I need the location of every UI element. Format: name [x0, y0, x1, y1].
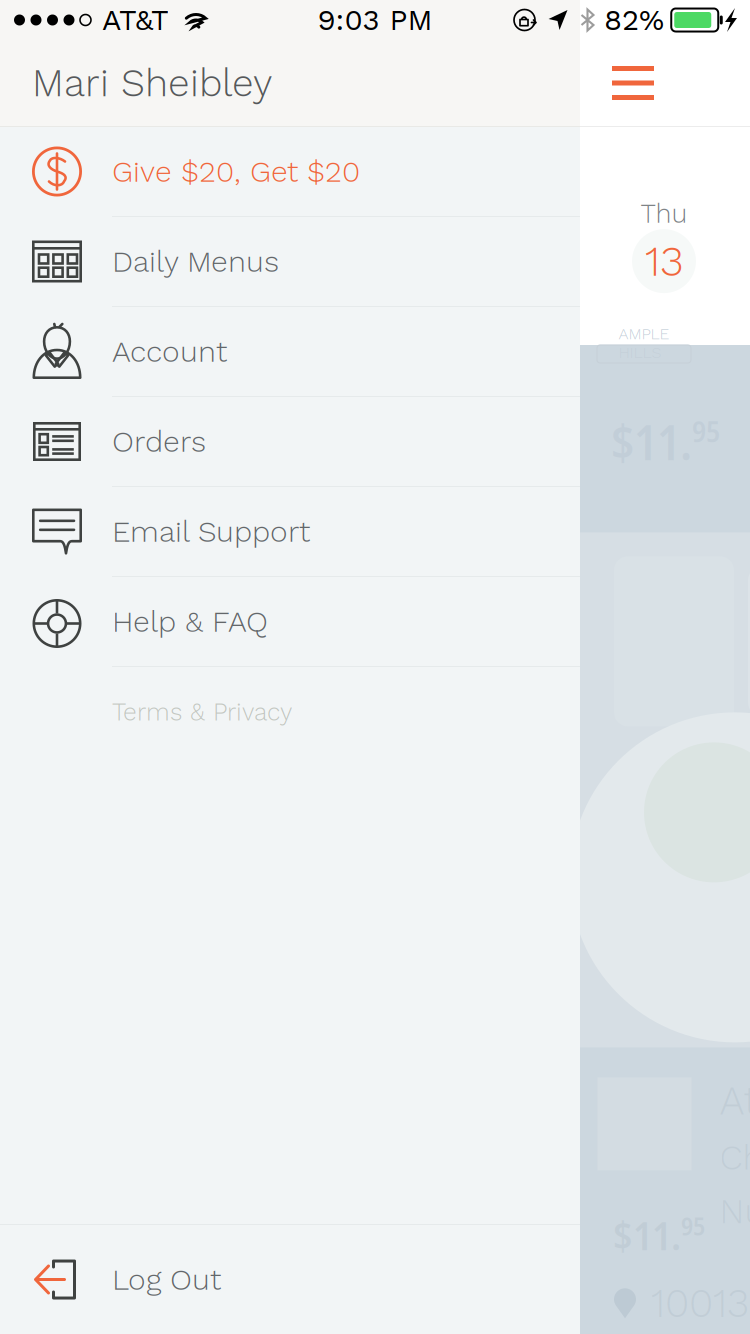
- staticText: Chef Daniel Holzman: [719, 1137, 750, 1178]
- button[interactable]: Thu: [580, 127, 748, 345]
- staticText: Orders: [112, 424, 206, 459]
- staticText: 10013: [651, 1280, 749, 1327]
- button[interactable]: Account: [0, 307, 580, 397]
- staticText: 13: [645, 236, 683, 286]
- staticText: Log Out: [112, 1262, 221, 1297]
- staticText: 95: [681, 1208, 705, 1243]
- button[interactable]: Orders: [0, 397, 580, 487]
- staticText: 95: [692, 411, 720, 451]
- staticText: Help & FAQ: [112, 604, 268, 639]
- button[interactable]: Give $20, Get $20: [0, 127, 580, 217]
- staticText: $11.: [611, 409, 692, 474]
- button[interactable]: Email Support: [0, 487, 580, 577]
- staticText: $11.: [613, 1207, 681, 1262]
- staticText: Atlantic Salmon: [719, 1077, 750, 1124]
- staticText: Terms & Privacy: [112, 697, 292, 726]
- staticText: Give $20, Get $20: [112, 154, 360, 189]
- button[interactable]: Log Out: [0, 1225, 580, 1334]
- staticText: 82%: [604, 3, 664, 37]
- staticText: Thu: [640, 198, 687, 229]
- button[interactable]: Daily Menus: [0, 217, 580, 307]
- staticText: Email Support: [112, 514, 310, 549]
- staticText: Daily Menus: [112, 244, 279, 279]
- button[interactable]: Menu: [612, 53, 686, 113]
- staticText: Nutrition Info: [719, 1191, 750, 1232]
- staticText: Mari Sheibley: [32, 60, 272, 106]
- staticText: Account: [112, 334, 227, 369]
- staticText: AT&T: [102, 3, 169, 37]
- staticText: AMPLE HILLS: [618, 324, 669, 362]
- staticText: 9:03 PM: [317, 3, 432, 37]
- button[interactable]: Help & FAQ: [0, 577, 580, 667]
- button[interactable]: Terms & Privacy: [0, 667, 580, 757]
